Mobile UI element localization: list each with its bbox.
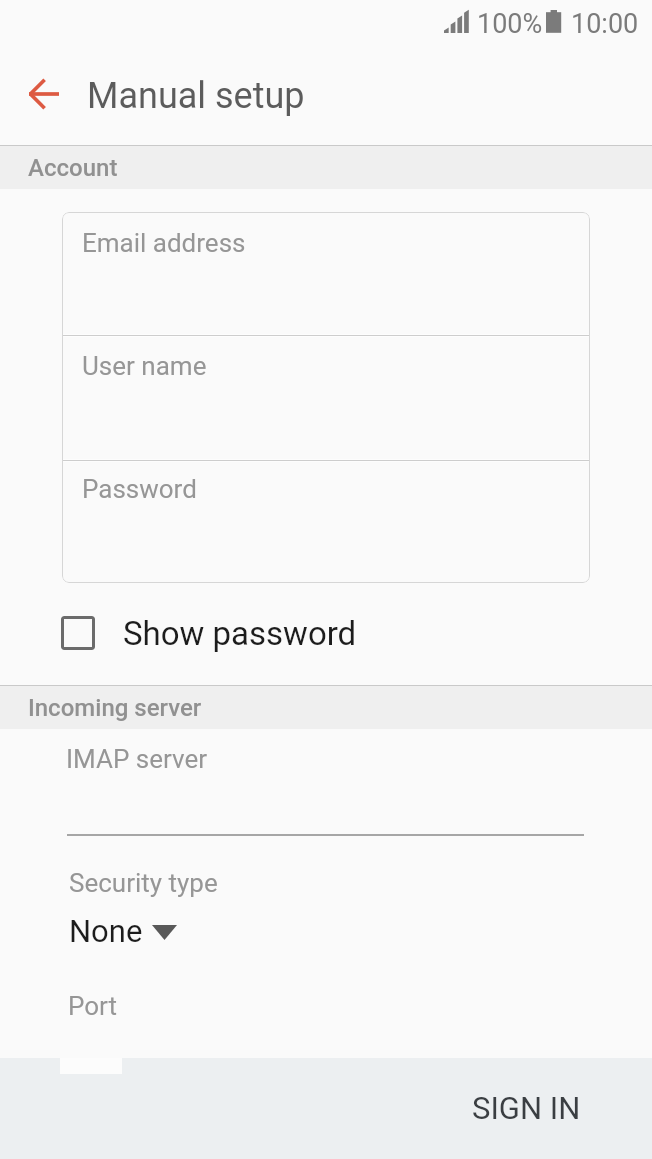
button[interactable]: Show password: [0, 600, 652, 666]
button[interactable]: Password: [62, 461, 590, 583]
button[interactable]: IMAP server: [0, 729, 652, 847]
staticText: 100%: [477, 8, 543, 40]
staticText: User name: [82, 351, 207, 381]
button[interactable]: SIGN IN: [439, 1074, 613, 1142]
staticText: Password: [82, 474, 197, 504]
staticText: SIGN IN: [472, 1090, 581, 1126]
staticText: Account: [28, 154, 118, 182]
staticText: 10:00: [571, 8, 639, 40]
button[interactable]: Port: [0, 980, 652, 1059]
staticText: Show password: [123, 614, 357, 653]
staticText: Email address: [82, 228, 246, 258]
staticText: Security type: [69, 868, 218, 898]
staticText: None: [69, 913, 143, 949]
button[interactable]: Email address: [62, 212, 590, 335]
staticText: IMAP server: [66, 744, 208, 774]
button[interactable]: Back: [14, 64, 73, 123]
staticText: Port: [68, 991, 118, 1021]
button[interactable]: User name: [62, 336, 590, 460]
staticText: Manual setup: [87, 75, 305, 117]
staticText: Incoming server: [28, 694, 202, 722]
button[interactable]: Security type: [0, 857, 652, 965]
